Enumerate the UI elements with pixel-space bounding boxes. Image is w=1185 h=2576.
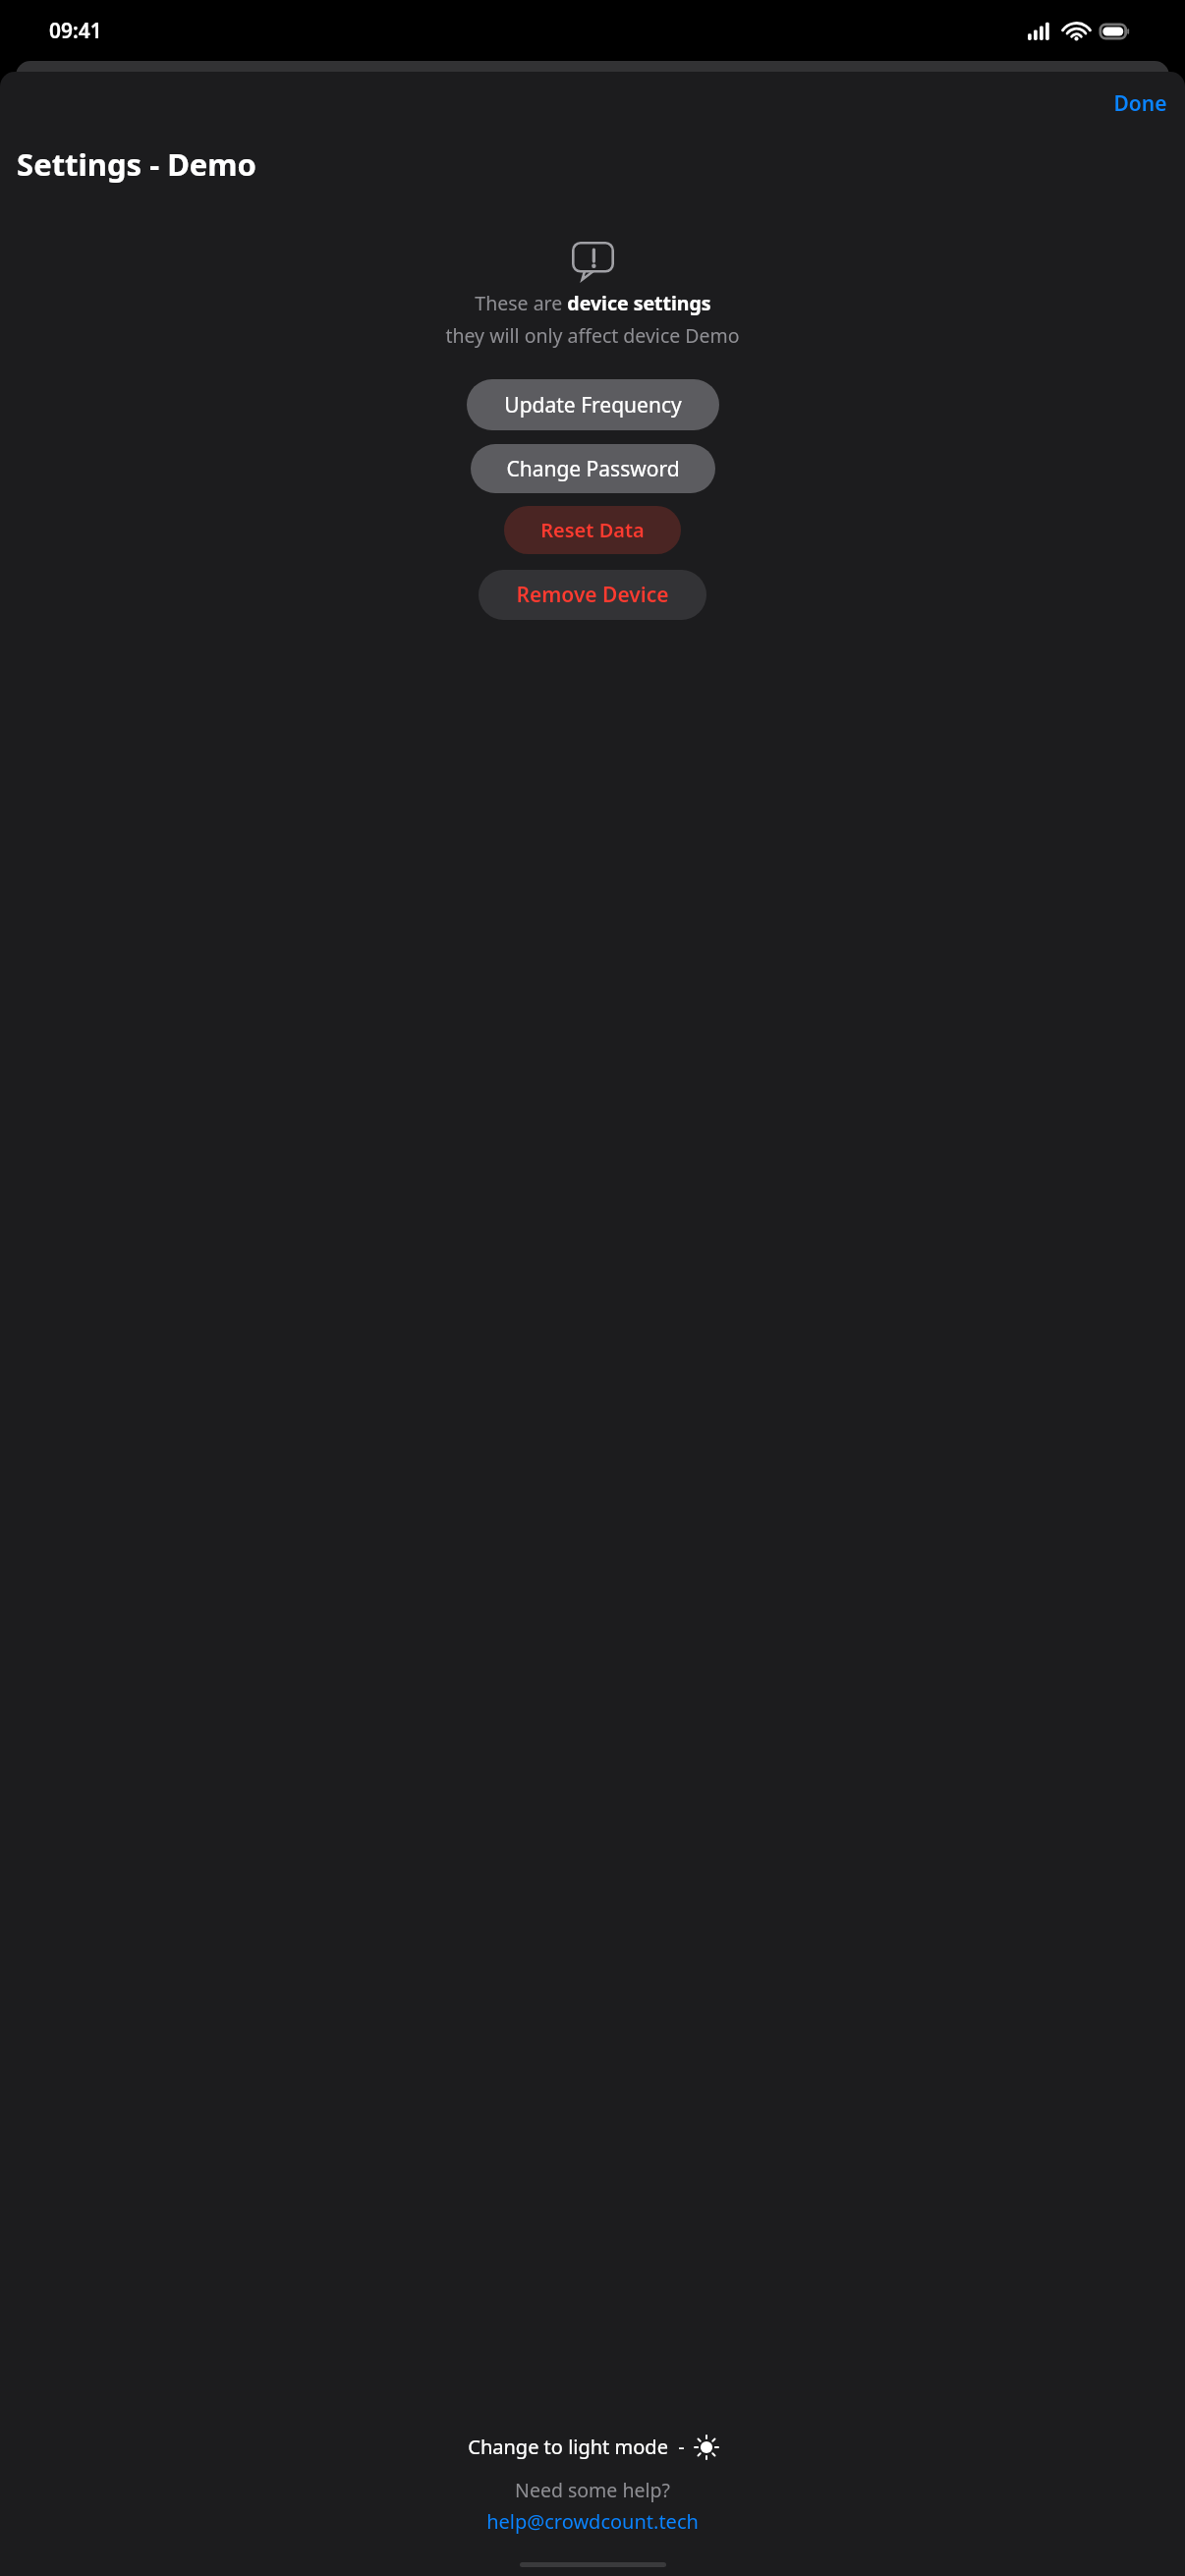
staticText: 09:41 [49,17,102,45]
button[interactable]: Reset Data [504,506,681,554]
button[interactable]: Change to light mode - [0,2434,1185,2460]
staticText: Update Frequency [504,391,682,420]
staticText: These are device settings [475,290,711,316]
button[interactable]: Done [1107,82,1173,126]
button[interactable]: Remove Device [479,570,706,620]
staticText: Change to light mode - [468,2434,685,2460]
other: Light mode [695,2436,718,2459]
staticText: Done [1113,89,1167,118]
staticText: Need some help? [515,2477,670,2503]
staticText: Reset Data [540,517,645,543]
button[interactable]: help@crowdcount.tech [486,2508,699,2535]
staticText: Remove Device [516,581,669,609]
staticText: they will only affect device Demo [445,322,740,349]
staticText: Settings - Demo [17,143,256,185]
button[interactable]: Change Password [471,444,715,493]
button[interactable]: Update Frequency [467,379,719,430]
staticText: Change Password [506,455,680,483]
staticText: help@crowdcount.tech [486,2508,699,2535]
